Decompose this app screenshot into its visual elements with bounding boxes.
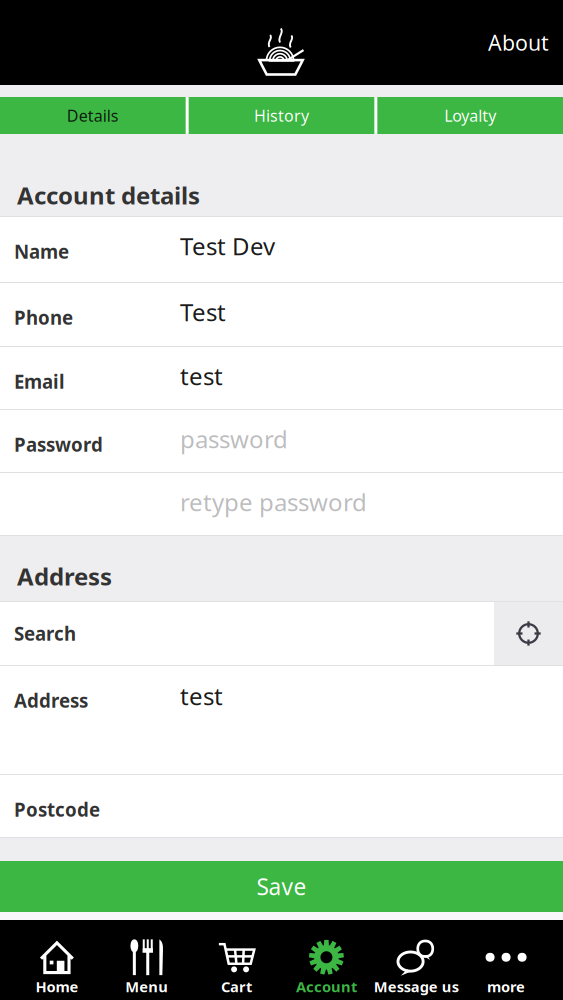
- staticText: Details: [67, 105, 119, 126]
- staticText: Message us: [374, 977, 459, 996]
- button[interactable]: Postcode: [0, 775, 563, 837]
- staticText: Loyalty: [444, 105, 496, 126]
- staticText: Address: [14, 688, 88, 713]
- button[interactable]: Cart: [192, 920, 281, 1000]
- staticText: more: [487, 977, 525, 996]
- staticText: About: [488, 28, 549, 57]
- staticText: Phone: [14, 305, 73, 330]
- button[interactable]: Password: [0, 410, 563, 472]
- button[interactable]: [0, 473, 563, 535]
- staticText: Cart: [221, 977, 252, 996]
- button[interactable]: Message us: [371, 920, 461, 1000]
- button[interactable]: Details: [0, 97, 186, 134]
- staticText: test: [180, 680, 223, 712]
- button[interactable]: Home: [12, 920, 102, 1000]
- staticText: retype password: [180, 486, 367, 518]
- staticText: Address: [17, 560, 112, 592]
- button[interactable]: Address: [0, 666, 563, 774]
- button[interactable]: Use current location: [494, 602, 563, 665]
- button[interactable]: Loyalty: [377, 97, 563, 134]
- staticText: Search: [14, 621, 76, 646]
- staticText: Name: [14, 239, 69, 264]
- button[interactable]: Name: [0, 217, 563, 282]
- button[interactable]: more: [461, 920, 551, 1000]
- staticText: password: [180, 423, 288, 455]
- button[interactable]: About: [474, 16, 563, 69]
- staticText: Account details: [17, 179, 200, 211]
- staticText: Test Dev: [180, 230, 275, 262]
- staticText: Email: [14, 369, 65, 394]
- staticText: History: [254, 105, 309, 126]
- staticText: Test: [180, 296, 226, 328]
- staticText: Home: [35, 977, 78, 996]
- staticText: Password: [14, 432, 103, 457]
- staticText: test: [180, 360, 223, 392]
- staticText: Menu: [125, 977, 168, 996]
- button[interactable]: Email: [0, 347, 563, 409]
- staticText: Save: [256, 871, 306, 901]
- button[interactable]: History: [189, 97, 374, 134]
- staticText: Account: [296, 977, 357, 996]
- button[interactable]: Phone: [0, 283, 563, 346]
- button[interactable]: Save: [0, 861, 563, 912]
- staticText: Postcode: [14, 797, 100, 822]
- button[interactable]: Account: [281, 920, 371, 1000]
- button[interactable]: Menu: [102, 920, 192, 1000]
